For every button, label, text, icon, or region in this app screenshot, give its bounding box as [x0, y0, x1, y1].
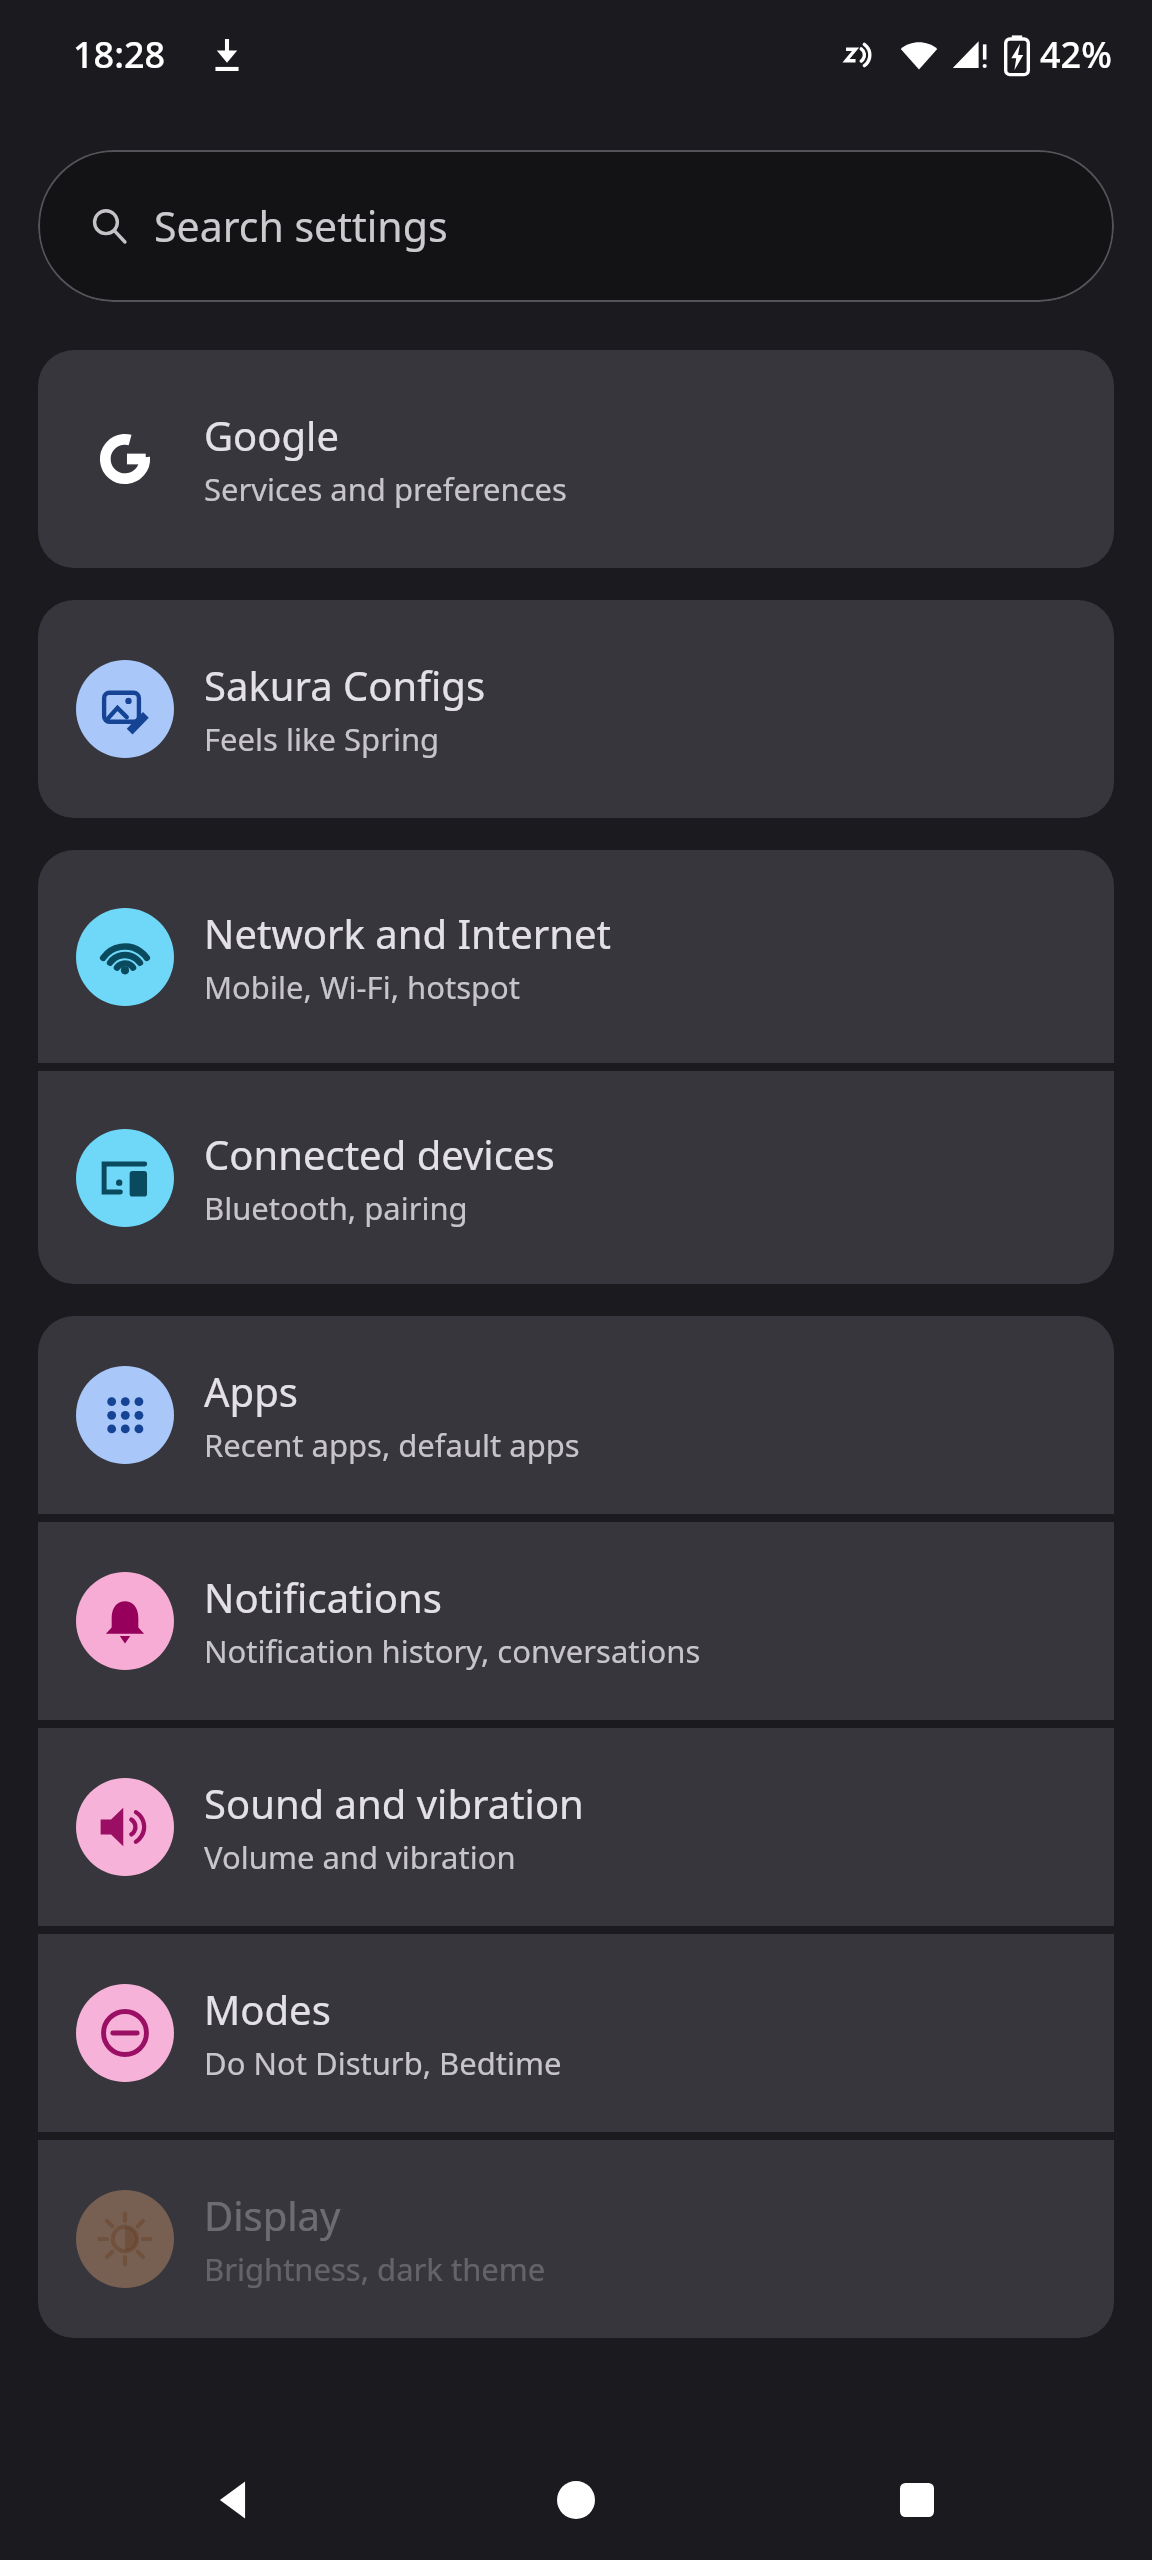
staticText: Notification history, conversations: [204, 1630, 701, 1672]
staticText: Mobile, Wi-Fi, hotspot: [204, 966, 521, 1008]
button[interactable]: Modes: [38, 1934, 1114, 2132]
staticText: Network and Internet: [204, 906, 611, 960]
button[interactable]: Search settings: [38, 150, 1114, 302]
staticText: Display: [204, 2188, 341, 2242]
staticText: Apps: [204, 1364, 298, 1418]
staticText: Modes: [204, 1982, 331, 2036]
staticText: Recent apps, default apps: [204, 1424, 580, 1466]
button[interactable]: Sound and vibration: [38, 1728, 1114, 1926]
staticText: Connected devices: [204, 1127, 555, 1181]
button[interactable]: Notifications: [38, 1522, 1114, 1720]
staticText: Search settings: [154, 198, 448, 254]
button[interactable]: Back: [180, 2445, 290, 2555]
staticText: Brightness, dark theme: [204, 2248, 546, 2290]
staticText: Services and preferences: [204, 468, 567, 510]
staticText: 18:28: [73, 30, 166, 79]
button[interactable]: Apps: [38, 1316, 1114, 1514]
staticText: Sound and vibration: [204, 1776, 584, 1830]
button[interactable]: Display: [38, 2140, 1114, 2338]
staticText: Bluetooth, pairing: [204, 1187, 468, 1229]
button[interactable]: Network and Internet: [38, 850, 1114, 1063]
staticText: Do Not Disturb, Bedtime: [204, 2042, 562, 2084]
button[interactable]: Recent apps: [862, 2445, 972, 2555]
button[interactable]: Connected devices: [38, 1071, 1114, 1284]
staticText: Sakura Configs: [204, 658, 486, 712]
staticText: Notifications: [204, 1570, 442, 1624]
staticText: Volume and vibration: [204, 1836, 516, 1878]
button[interactable]: Home: [521, 2445, 631, 2555]
staticText: Feels like Spring: [204, 718, 440, 760]
button[interactable]: Sakura Configs: [38, 600, 1114, 818]
staticText: Google: [204, 408, 339, 462]
button[interactable]: Google: [38, 350, 1114, 568]
staticText: 42%: [1040, 30, 1112, 79]
